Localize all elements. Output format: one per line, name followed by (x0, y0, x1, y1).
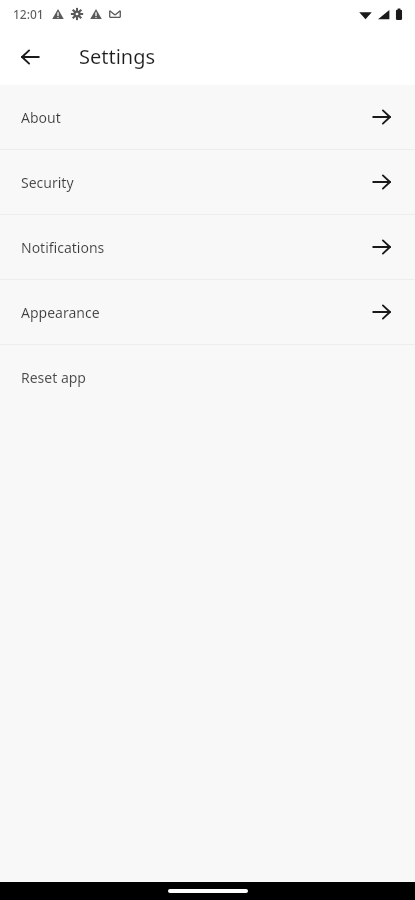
staticText: 12:01 (13, 6, 44, 22)
button[interactable]: Notifications (0, 215, 415, 279)
staticText: Security (21, 173, 74, 192)
button[interactable]: Reset app (0, 345, 415, 409)
button[interactable]: Security (0, 150, 415, 214)
button[interactable]: About (0, 85, 415, 149)
staticText: Settings (79, 43, 156, 70)
staticText: About (21, 108, 61, 127)
staticText: Appearance (21, 303, 100, 322)
staticText: Notifications (21, 238, 105, 257)
button[interactable]: Appearance (0, 280, 415, 344)
button[interactable]: Back (10, 37, 50, 77)
staticText: Reset app (21, 368, 86, 387)
